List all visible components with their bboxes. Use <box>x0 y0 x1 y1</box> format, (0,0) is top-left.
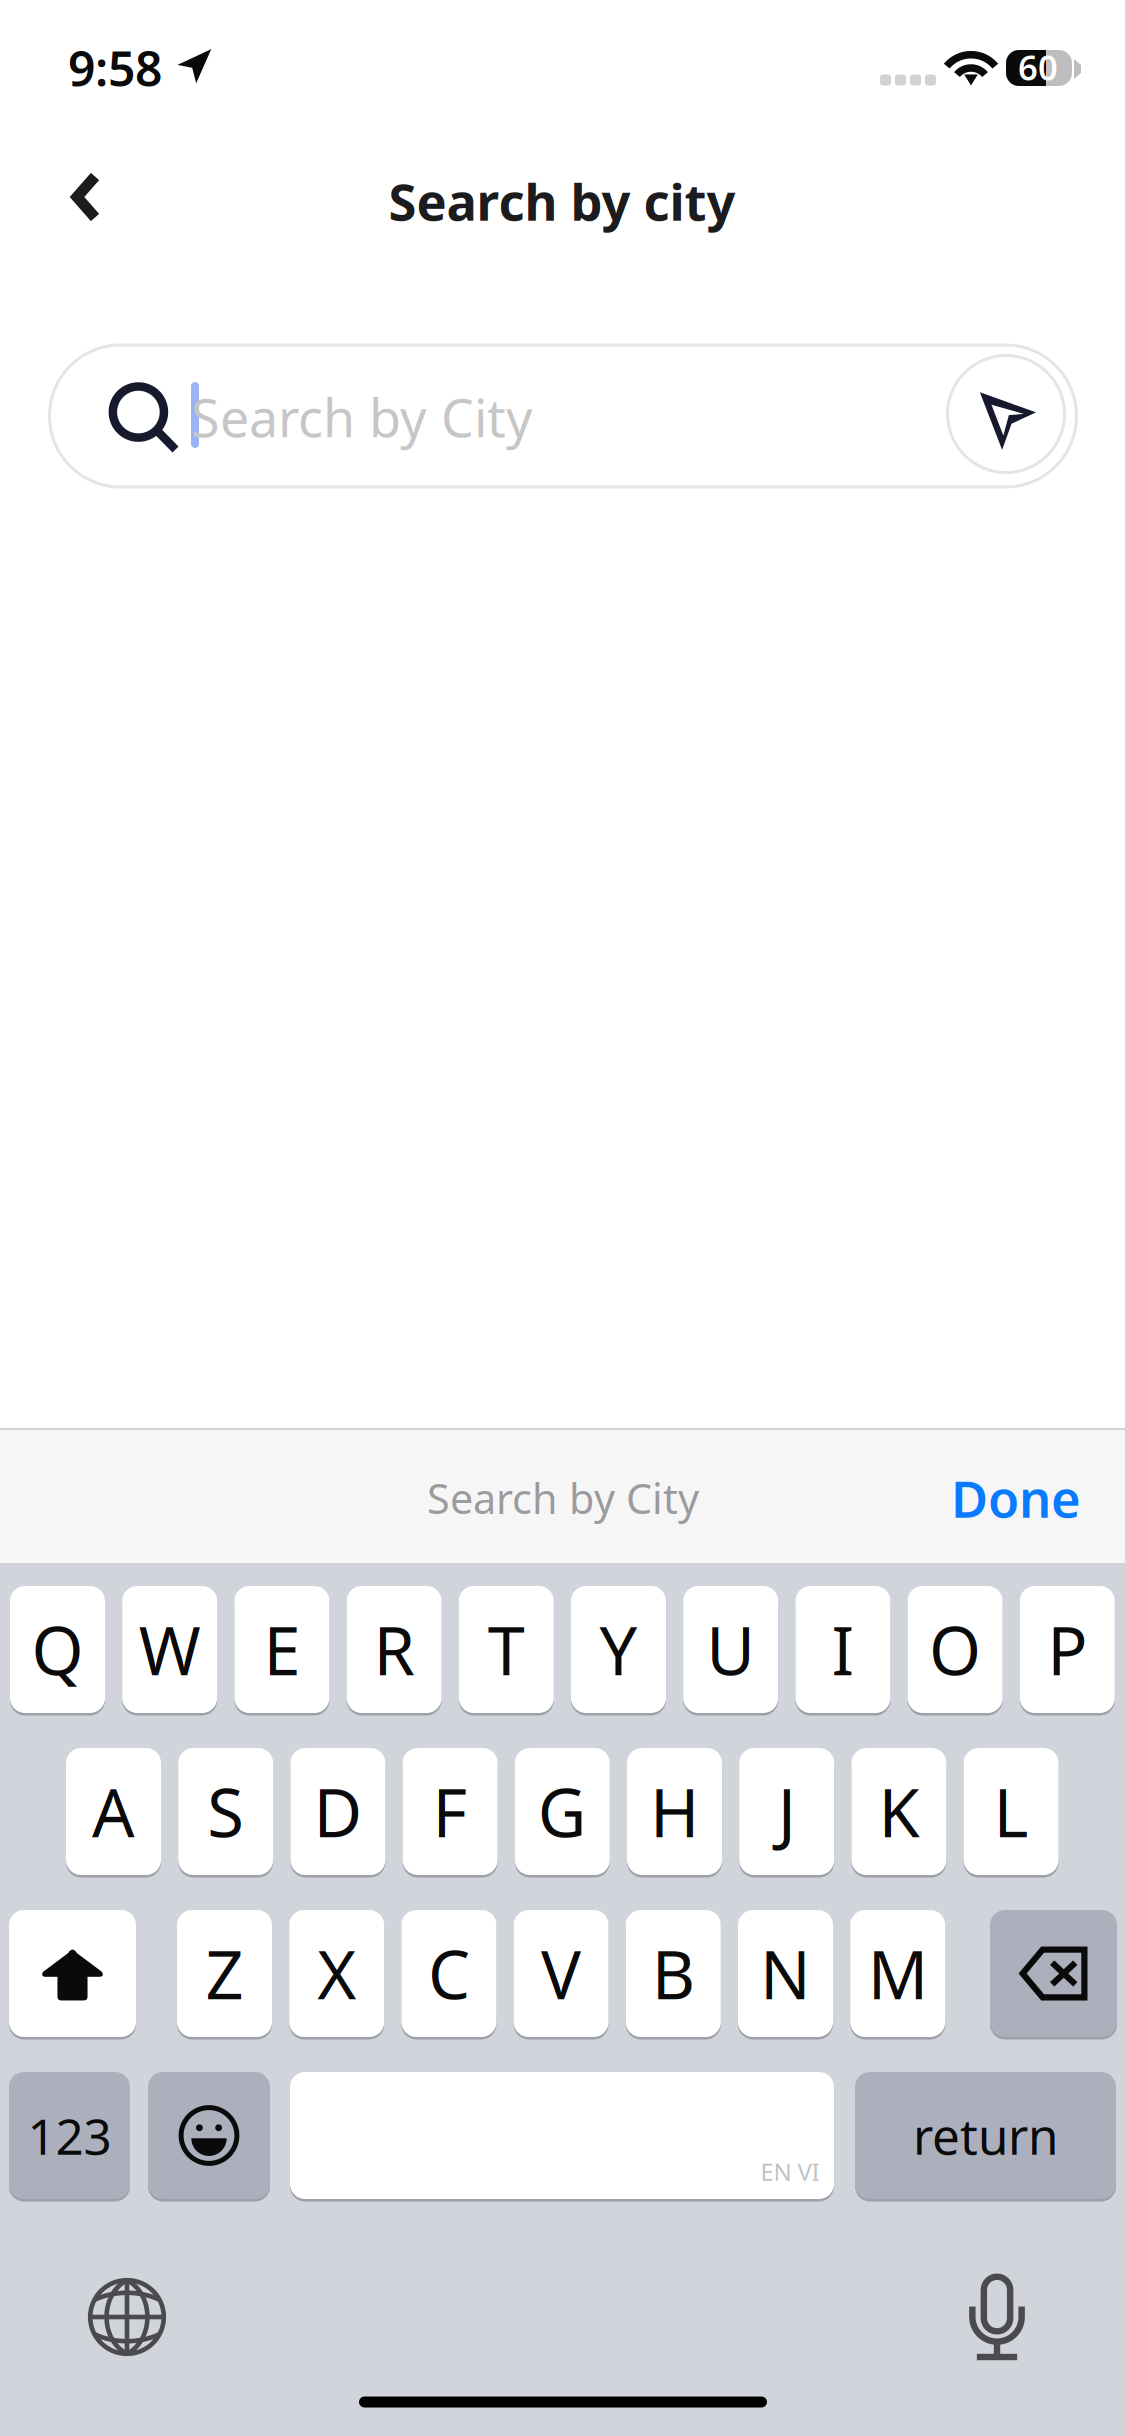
staticText: M <box>868 1929 928 2018</box>
staticText: return <box>913 2103 1058 2168</box>
staticText: U <box>706 1605 755 1694</box>
button[interactable]: H <box>627 1748 722 1875</box>
staticText: C <box>428 1929 470 2018</box>
button[interactable]: Dictate <box>937 2257 1057 2377</box>
button[interactable]: O <box>908 1586 1003 1713</box>
button[interactable]: G <box>515 1748 610 1875</box>
staticText: P <box>1047 1605 1087 1694</box>
button[interactable]: E <box>234 1586 329 1713</box>
staticText: V <box>541 1929 581 2018</box>
button[interactable]: I <box>795 1586 890 1713</box>
staticText: 123 <box>27 2103 111 2168</box>
staticText: T <box>488 1605 525 1694</box>
staticText: Q <box>31 1605 83 1694</box>
button[interactable]: Done <box>916 1443 1116 1553</box>
button[interactable]: U <box>683 1586 778 1713</box>
button[interactable]: T <box>459 1586 554 1713</box>
staticText: D <box>313 1767 362 1856</box>
button[interactable]: B <box>626 1910 721 2037</box>
button[interactable]: F <box>403 1748 498 1875</box>
button[interactable]: shift <box>9 1910 136 2037</box>
staticText: G <box>538 1767 587 1856</box>
button[interactable]: C <box>401 1910 496 2037</box>
staticText: Search by City <box>191 382 533 452</box>
staticText: S <box>207 1767 244 1856</box>
button[interactable]: return <box>855 2072 1116 2199</box>
staticText: EN VI <box>760 2156 819 2187</box>
staticText: L <box>994 1767 1029 1856</box>
staticText: Done <box>951 1464 1081 1532</box>
button[interactable]: emoji <box>148 2072 270 2199</box>
staticText: X <box>317 1929 356 2018</box>
staticText: B <box>652 1929 695 2018</box>
staticText: 60 <box>1018 44 1058 90</box>
button[interactable]: Y <box>571 1586 666 1713</box>
button[interactable]: Q <box>10 1586 105 1713</box>
staticText: F <box>433 1767 468 1856</box>
staticText: H <box>650 1767 699 1856</box>
button[interactable]: S <box>178 1748 273 1875</box>
button[interactable]: numbers <box>9 2072 130 2199</box>
button[interactable]: J <box>739 1748 834 1875</box>
button[interactable]: Z <box>177 1910 272 2037</box>
staticText: J <box>778 1767 796 1856</box>
staticText: Y <box>599 1605 637 1694</box>
button[interactable]: L <box>964 1748 1059 1875</box>
staticText: E <box>263 1605 300 1694</box>
button[interactable]: D <box>290 1748 385 1875</box>
button[interactable]: A <box>66 1748 161 1875</box>
button[interactable]: M <box>850 1910 945 2037</box>
button[interactable]: Next keyboard <box>67 2257 187 2377</box>
button[interactable]: V <box>514 1910 609 2037</box>
staticText: K <box>878 1767 919 1856</box>
button[interactable]: Use current location <box>947 355 1064 472</box>
button[interactable]: delete <box>990 1910 1117 2037</box>
staticText: A <box>92 1767 135 1856</box>
button[interactable]: R <box>347 1586 442 1713</box>
staticText: W <box>139 1605 201 1694</box>
staticText: O <box>929 1605 981 1694</box>
button[interactable]: W <box>122 1586 217 1713</box>
staticText: Search by city <box>388 167 735 235</box>
button[interactable]: N <box>738 1910 833 2037</box>
button[interactable]: space <box>290 2072 834 2199</box>
staticText: Z <box>205 1929 243 2018</box>
button[interactable]: Back <box>31 142 141 252</box>
staticText: I <box>831 1605 854 1694</box>
staticText: N <box>760 1929 811 2018</box>
button[interactable]: X <box>289 1910 384 2037</box>
button[interactable]: P <box>1020 1586 1115 1713</box>
staticText: Search by City <box>427 1471 699 1525</box>
button[interactable]: K <box>851 1748 946 1875</box>
staticText: R <box>374 1605 415 1694</box>
staticText: 9:58 <box>68 36 162 100</box>
